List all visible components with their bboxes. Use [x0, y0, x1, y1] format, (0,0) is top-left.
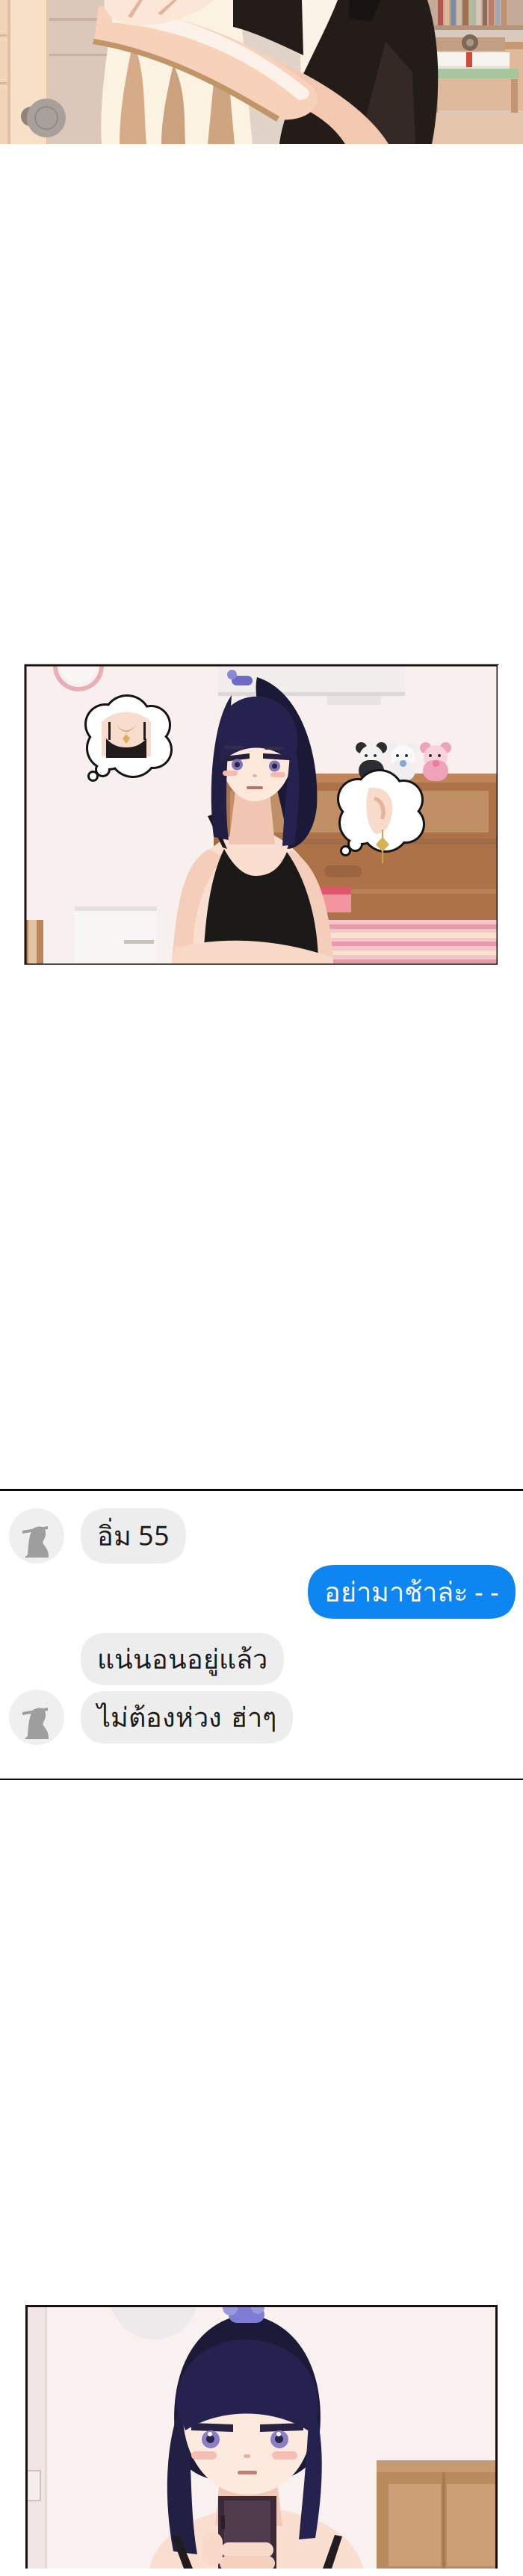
button[interactable]: ไม่ต้องห่วง ฮ่าๆ — [81, 1691, 293, 1743]
staticText: ไม่ต้องห่วง ฮ่าๆ — [97, 1697, 276, 1738]
button[interactable]: อย่ามาช้าล่ะ - - — [308, 1565, 516, 1619]
button[interactable]: แน่นอนอยู่แล้ว — [81, 1633, 284, 1685]
staticText: อิ่ม 55 — [97, 1515, 170, 1557]
staticText: อย่ามาช้าล่ะ - - — [324, 1571, 499, 1613]
button[interactable]: อิ่ม 55 — [81, 1508, 186, 1564]
staticText: แน่นอนอยู่แล้ว — [97, 1638, 267, 1680]
